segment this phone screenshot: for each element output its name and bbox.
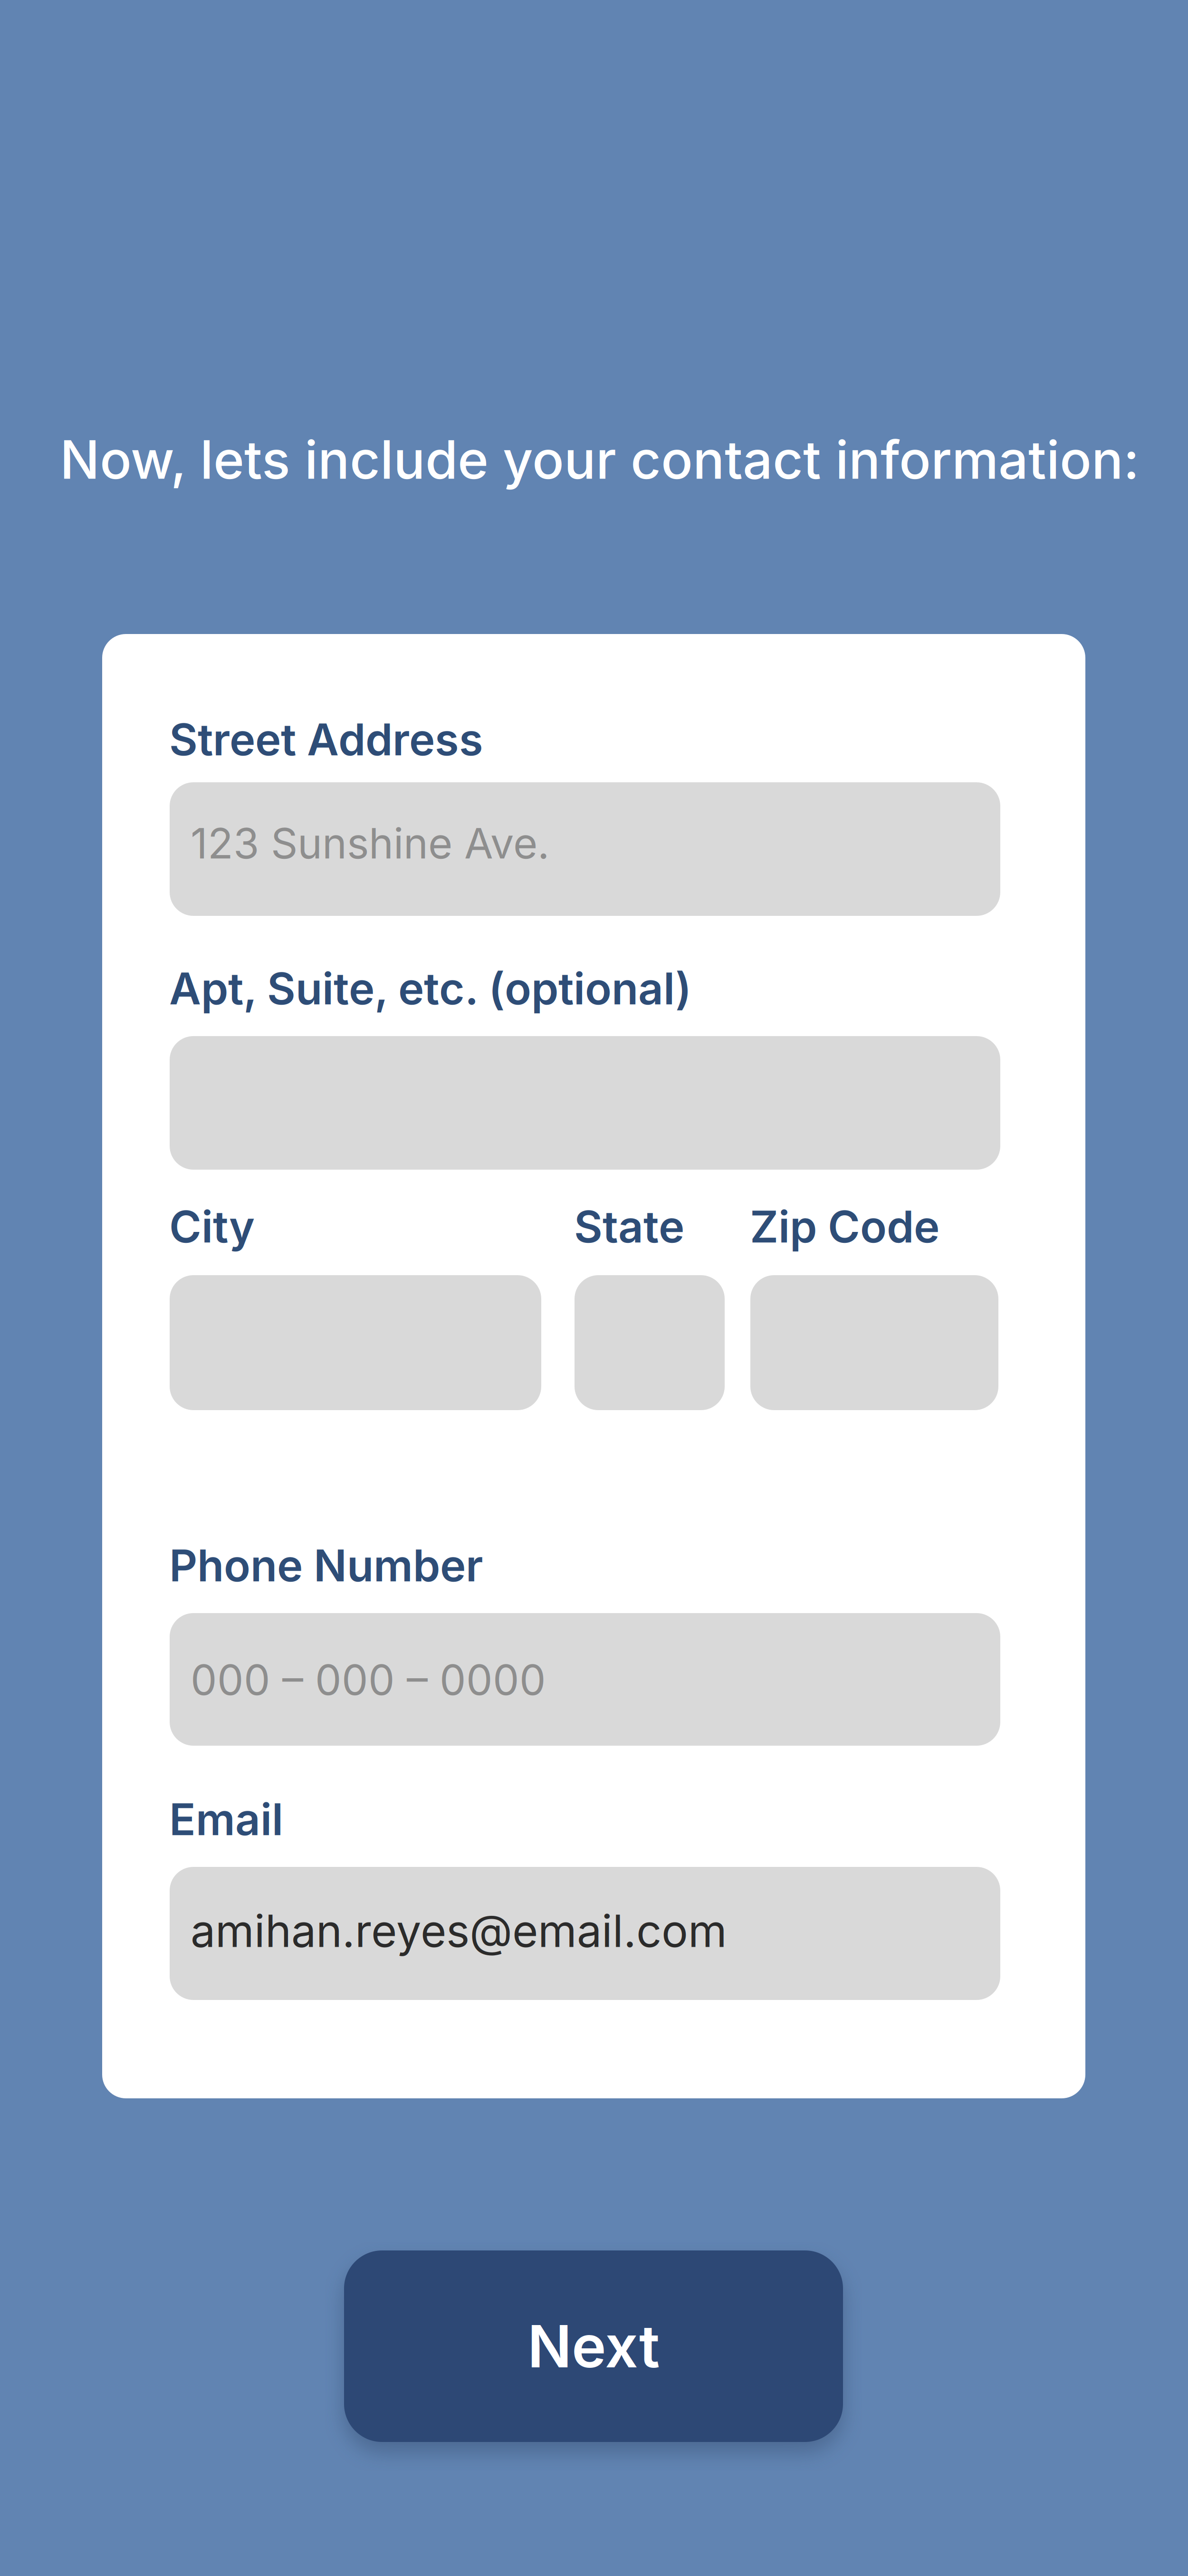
staticText: Phone Number [169,1539,483,1592]
staticText: 000 – 000 – 0000 [191,1654,546,1705]
button[interactable]: Email [170,1867,1000,2000]
staticText: City [169,1200,255,1253]
staticText: Zip Code [750,1200,939,1253]
staticText: amihan.reyes@email.com [191,1904,727,1958]
button[interactable]: Zip Code [750,1275,998,1410]
staticText: State [574,1200,684,1253]
button[interactable]: State [575,1275,725,1410]
button[interactable]: Next [344,2250,843,2442]
staticText: Apt, Suite, etc. (optional) [169,962,691,1015]
button[interactable]: Street Address [170,782,1000,916]
button[interactable]: City [170,1275,541,1410]
staticText: Now, lets include your contact informati… [60,428,1140,491]
button[interactable]: Phone Number [170,1613,1000,1746]
staticText: Next [527,2311,660,2381]
button[interactable]: Apt, Suite, etc. (optional) [170,1036,1000,1170]
staticText: Street Address [169,713,483,766]
staticText: 123 Sunshine Ave. [191,818,549,869]
staticText: Email [169,1793,283,1846]
